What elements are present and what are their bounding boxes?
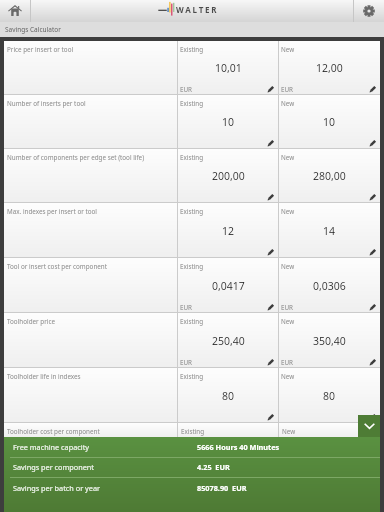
staticText: New [281,153,295,162]
staticText: New [281,99,295,108]
staticText: Savings per batch or year [13,483,197,493]
button[interactable]: Edit [265,247,275,257]
staticText: Savings per component [13,462,197,472]
staticText: EUR [281,358,294,367]
staticText: 250,40 [212,334,245,348]
button[interactable]: Tool or insert cost per component [4,258,380,313]
button[interactable]: Toolholder price [4,313,380,368]
staticText: EUR [281,303,294,312]
button[interactable]: Edit [265,84,275,94]
staticText: Existing [180,45,204,54]
staticText: 14 [323,224,336,238]
staticText: EUR [281,85,294,94]
staticText: New [281,317,295,326]
button[interactable]: Edit [367,192,377,202]
button[interactable]: Edit [367,357,377,367]
button[interactable]: Toolholder cost per component [4,423,380,437]
staticText: Toolholder life in indexes [7,372,81,381]
staticText: 80 [323,389,336,403]
button[interactable]: Savings per component [4,457,380,477]
staticText: Existing [180,317,204,326]
staticText: WALTER [176,4,219,15]
button[interactable]: Edit [367,138,377,148]
staticText: Toolholder cost per component [7,427,100,436]
button[interactable]: Max. indexes per insert or tool [4,203,380,258]
button[interactable]: Home [0,0,30,22]
button[interactable]: Toolholder life in indexes [4,368,380,423]
staticText: Max. indexes per insert or tool [7,207,97,216]
staticText: 0,0417 [212,279,245,293]
button[interactable]: Price per insert or tool [4,41,380,95]
button[interactable]: Edit [265,192,275,202]
staticText: Tool or insert cost per component [7,262,108,271]
staticText: 4.25 EUR [197,462,230,472]
staticText: EUR [180,358,193,367]
staticText: 200,00 [212,169,245,183]
staticText: Existing [180,262,204,271]
staticText: Number of components per edge set (tool … [7,153,145,162]
staticText: 10 [323,115,336,129]
button[interactable]: Expand results [358,415,380,437]
staticText: 0,0306 [313,279,346,293]
staticText: 80 [222,389,235,403]
button[interactable]: Edit [367,247,377,257]
staticText: EUR [180,85,193,94]
staticText: Existing [181,427,205,436]
staticText: Number of inserts per tool [7,99,86,108]
staticText: 12 [222,224,235,238]
button[interactable]: Free machine capacity [4,437,380,457]
staticText: Savings Calculator [5,25,61,34]
staticText: 10,01 [215,61,242,75]
button[interactable]: Settings [354,0,384,22]
staticText: Price per insert or tool [7,45,74,54]
staticText: Existing [180,99,204,108]
button[interactable]: Edit [367,84,377,94]
button[interactable]: Edit [367,302,377,312]
staticText: 350,40 [313,334,346,348]
staticText: EUR [180,303,193,312]
button[interactable]: Edit [265,412,275,422]
staticText: New [281,45,295,54]
staticText: Toolholder price [7,317,55,326]
button[interactable]: Number of components per edge set (tool … [4,149,380,203]
staticText: Existing [180,372,204,381]
button[interactable]: Edit [265,357,275,367]
button[interactable]: Number of inserts per tool [4,95,380,149]
staticText: 10 [222,115,235,129]
staticText: New [281,262,295,271]
staticText: New [281,372,295,381]
button[interactable]: Edit [265,138,275,148]
button[interactable]: Edit [265,302,275,312]
staticText: New [282,427,296,436]
staticText: 85078.90 EUR [197,483,247,493]
staticText: 12,00 [316,61,343,75]
staticText: 280,00 [313,169,346,183]
button[interactable]: Savings per batch or year [4,477,380,498]
staticText: Existing [180,207,204,216]
button[interactable]: Edit [367,412,377,422]
staticText: Existing [180,153,204,162]
staticText: 5666 Hours 40 Minutes [197,442,280,452]
staticText: New [281,207,295,216]
staticText: Free machine capacity [13,442,197,452]
